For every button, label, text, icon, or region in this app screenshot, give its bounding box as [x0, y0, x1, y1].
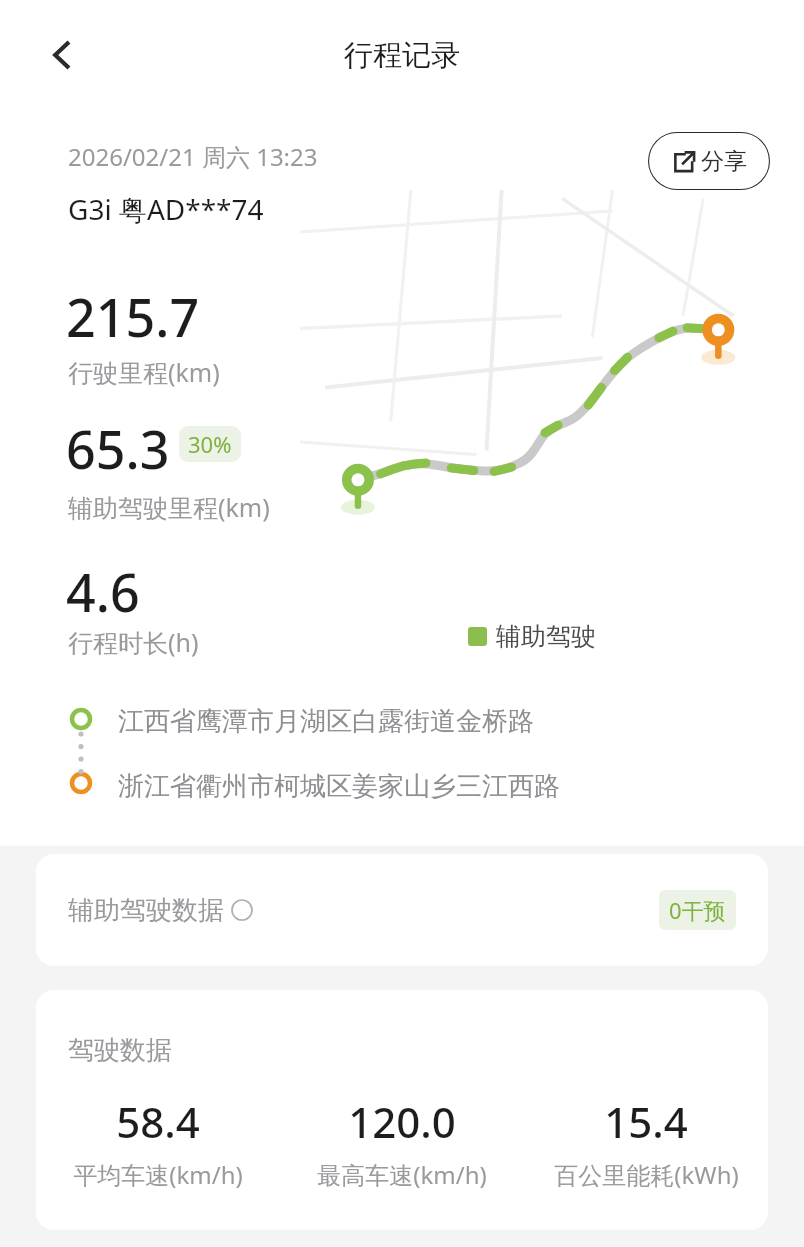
staticText: 行程记录	[344, 37, 460, 74]
staticText: 江西省鹰潭市月湖区白露街道金桥路	[118, 705, 534, 738]
staticText: 65.3	[66, 413, 170, 484]
staticText: 平均车速(km/h)	[73, 1158, 243, 1191]
button[interactable]: 辅助驾驶数据	[36, 854, 768, 966]
staticText: 浙江省衢州市柯城区姜家山乡三江西路	[118, 770, 560, 803]
staticText: 58.4	[116, 1093, 200, 1150]
staticText: 辅助驾驶	[496, 621, 596, 652]
staticText: G3i 粤AD***74	[68, 190, 264, 228]
staticText: 4.6	[66, 556, 140, 627]
staticText: 215.7	[66, 281, 200, 352]
staticText: 120.0	[348, 1093, 456, 1150]
staticText: 行驶里程(km)	[68, 355, 220, 389]
button[interactable]: Back	[26, 19, 98, 91]
staticText: 百公里能耗(kWh)	[554, 1158, 739, 1191]
staticText: 最高车速(km/h)	[317, 1158, 487, 1191]
button[interactable]: 分享	[648, 132, 770, 190]
staticText: 行程时长(h)	[68, 625, 199, 659]
staticText: 辅助驾驶里程(km)	[68, 490, 270, 524]
staticText: 辅助驾驶数据	[68, 894, 224, 927]
staticText: 驾驶数据	[68, 1034, 172, 1067]
staticText: 2026/02/21 周六 13:23	[68, 140, 318, 173]
staticText: 15.4	[604, 1093, 688, 1150]
staticText: 0干预	[669, 895, 726, 925]
staticText: 30%	[188, 429, 232, 459]
staticText: 分享	[701, 147, 747, 176]
